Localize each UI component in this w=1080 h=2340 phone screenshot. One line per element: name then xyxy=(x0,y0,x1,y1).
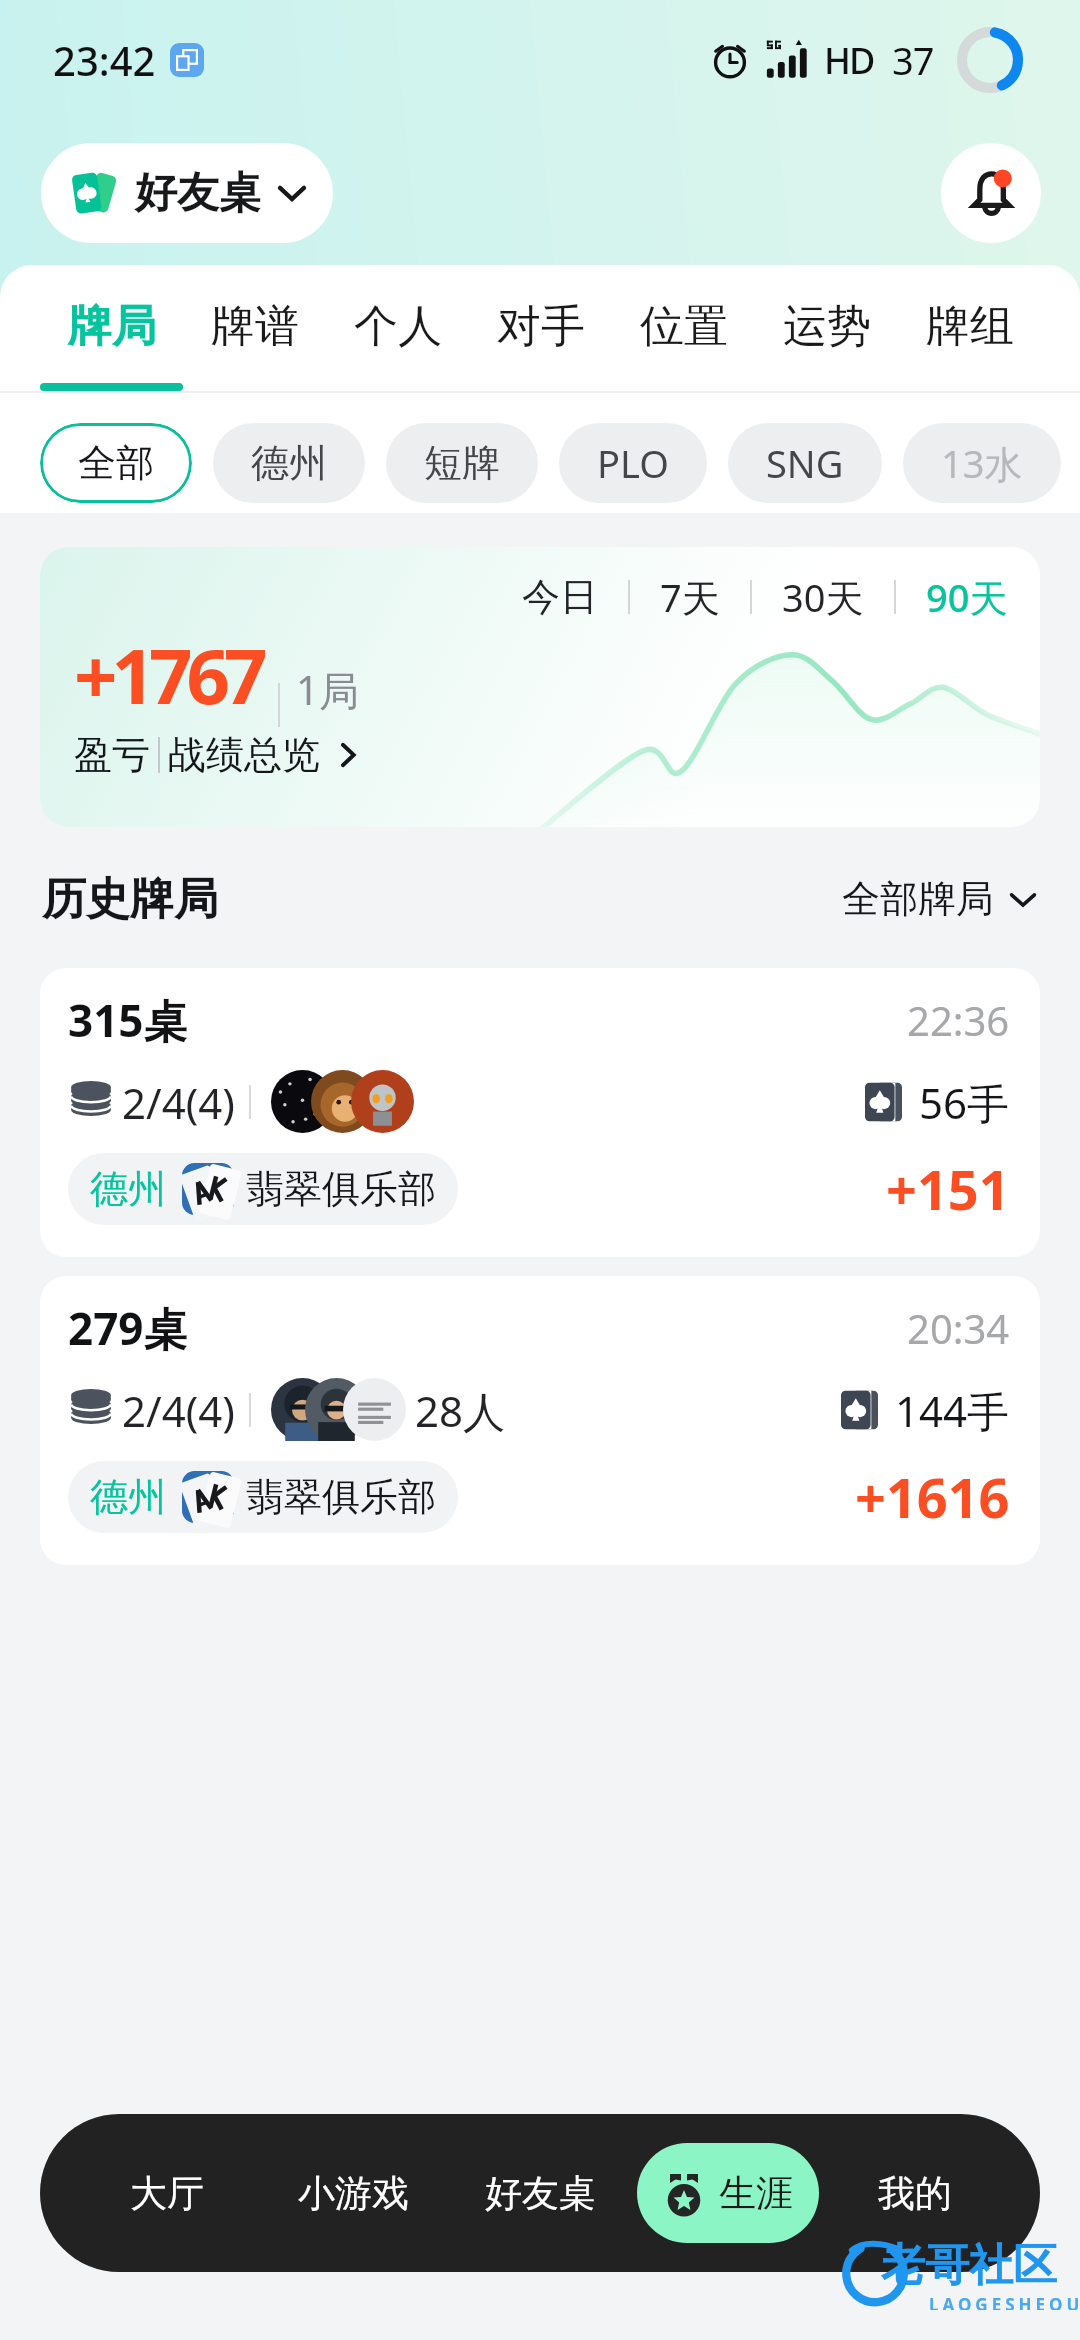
staticText: 老哥社区 xyxy=(881,2238,1057,2293)
staticText: 315桌 xyxy=(68,990,188,1050)
button[interactable]: 全部牌局 xyxy=(842,875,1038,923)
button[interactable]: 牌组 xyxy=(898,265,1041,391)
staticText: 牌局 xyxy=(68,299,156,354)
staticText: 56手 xyxy=(919,1074,1010,1131)
button[interactable]: 牌局 xyxy=(40,265,183,391)
staticText: 22:36 xyxy=(907,993,1010,1047)
button[interactable]: 279桌 xyxy=(40,1276,1040,1565)
staticText: 7天 xyxy=(660,571,720,623)
staticText: 37 xyxy=(892,34,934,86)
button[interactable]: 运势 xyxy=(755,265,898,391)
staticText: LAOGESHEQU xyxy=(929,2293,1080,2310)
staticText: 运势 xyxy=(783,299,871,354)
staticText: 13水 xyxy=(941,437,1023,489)
staticText: 历史牌局 xyxy=(42,872,218,927)
staticText: 全部牌局 xyxy=(842,875,994,923)
staticText: 2/4(4) xyxy=(122,1074,235,1131)
staticText: 战绩总览 xyxy=(168,731,320,779)
staticText: 德州 xyxy=(251,439,327,487)
staticText: 全部 xyxy=(78,439,154,487)
staticText: 牌谱 xyxy=(211,299,299,354)
staticText: 生涯 xyxy=(719,2170,793,2217)
staticText: 今日 xyxy=(522,573,598,621)
button[interactable]: 生涯 xyxy=(637,2143,819,2243)
staticText: 对手 xyxy=(497,299,585,354)
button[interactable]: SNG xyxy=(728,423,882,503)
button[interactable]: 今日 xyxy=(492,573,628,621)
staticText: 德州 xyxy=(90,1473,166,1521)
staticText: +151 xyxy=(886,1152,1010,1226)
staticText: +1616 xyxy=(855,1460,1010,1534)
button[interactable]: 对手 xyxy=(469,265,612,391)
staticText: 20:34 xyxy=(907,1301,1010,1355)
staticText: 我的 xyxy=(878,2170,952,2217)
button[interactable]: 今日 xyxy=(40,547,1040,827)
button[interactable]: 短牌 xyxy=(386,423,538,503)
button[interactable]: 我的 xyxy=(821,2133,1008,2253)
staticText: 短牌 xyxy=(424,439,500,487)
staticText: 个人 xyxy=(354,299,442,354)
button[interactable]: 小游戏 xyxy=(260,2133,447,2253)
staticText: 德州 xyxy=(90,1165,166,1213)
staticText: 盈亏 xyxy=(74,731,150,779)
button[interactable]: 315桌 xyxy=(40,968,1040,1257)
staticText: 28人 xyxy=(415,1382,506,1439)
staticText: 30天 xyxy=(782,571,864,623)
staticText: 23:42 xyxy=(53,33,156,87)
staticText: PLO xyxy=(597,437,669,489)
button[interactable]: PLO xyxy=(559,423,707,503)
button[interactable]: 90天 xyxy=(896,571,1038,623)
staticText: 2/4(4) xyxy=(122,1382,235,1439)
button[interactable]: 好友桌 xyxy=(41,143,333,243)
staticText: +1767 xyxy=(74,623,262,727)
button[interactable]: 大厅 xyxy=(73,2133,260,2253)
button[interactable]: 盈亏 xyxy=(74,731,364,779)
staticText: 大厅 xyxy=(130,2170,204,2217)
staticText: 好友桌 xyxy=(485,2170,596,2217)
staticText: 翡翠俱乐部 xyxy=(246,1165,436,1213)
staticText: 牌组 xyxy=(926,299,1014,354)
staticText: 1局 xyxy=(296,662,359,717)
button[interactable]: 13水 xyxy=(903,423,1061,503)
button[interactable]: 30天 xyxy=(752,571,894,623)
staticText: 90天 xyxy=(926,571,1008,623)
staticText: HD xyxy=(824,36,874,85)
staticText: 小游戏 xyxy=(298,2170,409,2217)
button[interactable]: 7天 xyxy=(630,571,750,623)
button[interactable]: 好友桌 xyxy=(447,2133,634,2253)
staticText: 翡翠俱乐部 xyxy=(246,1473,436,1521)
button[interactable]: 牌谱 xyxy=(183,265,326,391)
button[interactable]: 全部 xyxy=(40,423,192,503)
staticText: 144手 xyxy=(895,1382,1010,1439)
staticText: SNG xyxy=(766,437,844,489)
button[interactable]: 德州 xyxy=(213,423,365,503)
button[interactable]: 位置 xyxy=(612,265,755,391)
staticText: 好友桌 xyxy=(135,167,261,220)
button[interactable]: Notifications xyxy=(941,143,1041,243)
button[interactable]: 个人 xyxy=(326,265,469,391)
staticText: 位置 xyxy=(640,299,728,354)
staticText: 279桌 xyxy=(68,1298,188,1358)
